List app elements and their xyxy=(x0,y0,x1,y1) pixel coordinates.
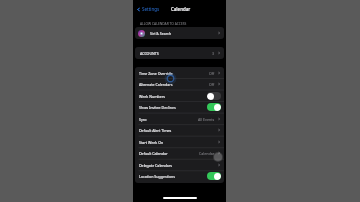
other: Open xyxy=(217,163,221,167)
button[interactable]: Show Invitee Declines xyxy=(135,101,224,113)
staticText: Start Week On xyxy=(139,140,164,145)
other: Open xyxy=(217,31,221,35)
staticText: Calendar xyxy=(199,151,215,156)
staticText: Default Calendar xyxy=(139,151,168,156)
other: Open xyxy=(217,71,221,75)
button[interactable]: Time Zone Override xyxy=(135,67,224,79)
staticText: Off xyxy=(209,71,215,76)
button[interactable]: Default Alert Times xyxy=(135,124,224,136)
button[interactable]: Week Numbers xyxy=(135,90,224,102)
staticText: Calendar xyxy=(171,6,191,12)
other: Open xyxy=(217,128,221,132)
button[interactable]: ACCOUNTS xyxy=(135,47,224,59)
other: Open xyxy=(217,82,221,86)
button[interactable]: Default Calendar xyxy=(135,147,224,159)
button[interactable]: Siri & Search xyxy=(135,27,224,39)
button[interactable]: Delegate Calendars xyxy=(135,159,224,171)
staticText: Alternate Calendars xyxy=(139,82,173,87)
button[interactable]: Week Numbers xyxy=(207,92,221,100)
staticText: Sync xyxy=(139,117,147,122)
button[interactable]: Start Week On xyxy=(135,136,224,148)
staticText: 3 xyxy=(212,51,215,56)
button[interactable]: Settings xyxy=(136,6,160,12)
staticText: Settings xyxy=(142,6,160,12)
staticText: Siri & Search xyxy=(150,31,172,36)
button[interactable]: Location Suggestions xyxy=(135,170,224,182)
button[interactable]: Show Invitee Declines xyxy=(207,103,221,111)
staticText: Delegate Calendars xyxy=(139,163,172,168)
staticText: Location Suggestions xyxy=(139,174,176,179)
staticText: ACCOUNTS xyxy=(140,51,159,56)
button[interactable]: Location Suggestions xyxy=(207,172,221,180)
staticText: ALLOW CALENDAR TO ACCESS xyxy=(140,21,187,25)
staticText: Show Invitee Declines xyxy=(139,105,176,110)
other: Open xyxy=(217,117,221,121)
other: Open xyxy=(217,151,221,155)
button[interactable]: Alternate Calendars xyxy=(135,78,224,90)
other: Open xyxy=(217,51,221,55)
other: Open xyxy=(217,140,221,144)
staticText: Off xyxy=(209,82,215,87)
staticText: Time Zone Override xyxy=(139,71,173,76)
button[interactable]: Sync xyxy=(135,113,224,125)
staticText: Week Numbers xyxy=(139,94,165,99)
staticText: All Events xyxy=(198,117,215,122)
staticText: Default Alert Times xyxy=(139,128,172,133)
